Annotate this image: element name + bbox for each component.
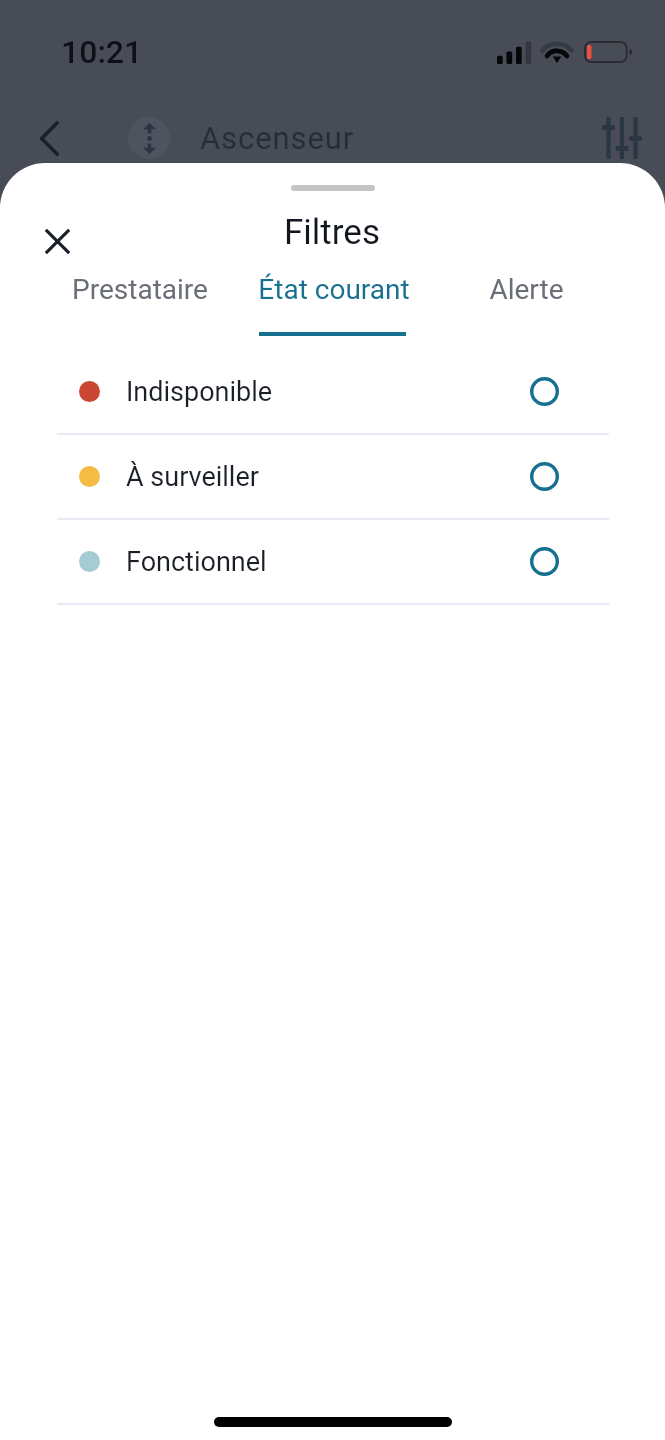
staticText: Ascenseur — [200, 120, 355, 156]
button[interactable]: Retour — [21, 110, 77, 166]
staticText: À surveiller — [126, 461, 259, 493]
button[interactable]: Alerte — [430, 265, 623, 336]
button[interactable]: Fermer — [29, 213, 85, 269]
button[interactable]: État courant — [237, 265, 430, 336]
staticText: 10:21 — [61, 33, 143, 71]
button[interactable]: Indisponible — [0, 350, 665, 435]
staticText: Indisponible — [126, 376, 273, 408]
button[interactable]: Fonctionnel — [0, 520, 665, 605]
button[interactable]: Filtres — [594, 110, 650, 166]
staticText: État courant — [258, 273, 410, 306]
staticText: Prestataire — [72, 273, 208, 306]
staticText: Filtres — [284, 212, 380, 253]
button[interactable]: À surveiller — [0, 435, 665, 520]
staticText: Alerte — [489, 273, 564, 306]
staticText: Fonctionnel — [126, 546, 267, 578]
button[interactable]: Prestataire — [43, 265, 237, 336]
